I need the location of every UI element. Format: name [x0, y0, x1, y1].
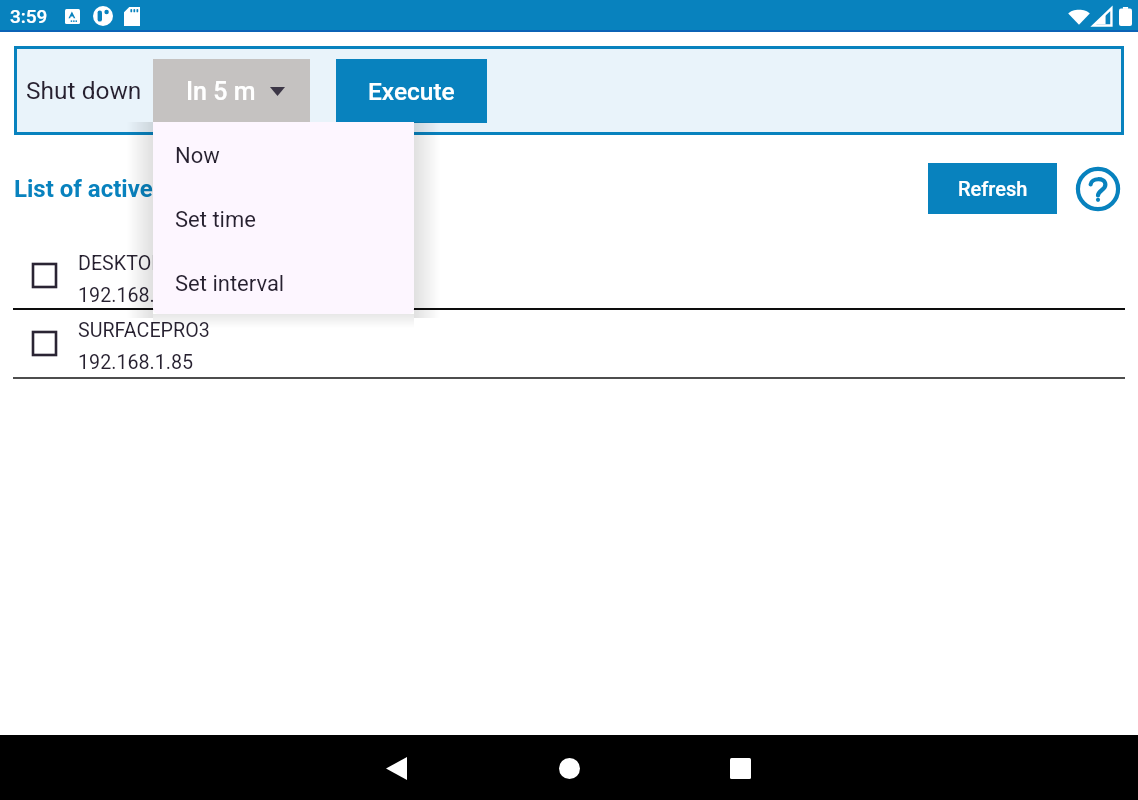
staticText: Refresh: [958, 177, 1028, 200]
button[interactable]: In 5 m: [153, 59, 310, 123]
staticText: Set interval: [175, 271, 285, 297]
staticText: 192.168.1.85: [78, 351, 194, 374]
staticText: Set time: [175, 207, 256, 233]
staticText: List of active devices: [14, 175, 242, 203]
staticText: Execute: [368, 77, 455, 106]
button[interactable]: Execute: [336, 59, 487, 123]
button[interactable]: SURFACEPRO3: [0, 310, 1138, 377]
staticText: Shut down: [26, 76, 142, 105]
button[interactable]: Refresh: [928, 163, 1057, 214]
button[interactable]: Recent apps: [713, 741, 767, 795]
button[interactable]: Set time: [153, 186, 414, 250]
staticText: SURFACEPRO3: [78, 319, 210, 342]
staticText: DESKTOP-ABCDEF: [78, 252, 242, 275]
staticText: 3:59: [10, 5, 48, 27]
button[interactable]: Now: [153, 122, 414, 186]
staticText: In 5 m: [186, 77, 256, 106]
staticText: 192.168.1.84: [78, 284, 194, 307]
button[interactable]: Home: [542, 741, 596, 795]
button[interactable]: Set interval: [153, 250, 414, 314]
staticText: Now: [175, 143, 220, 169]
button[interactable]: DESKTOP-ABCDEF: [0, 241, 1138, 308]
button[interactable]: Help: [1071, 163, 1125, 214]
button[interactable]: Back: [369, 741, 423, 795]
